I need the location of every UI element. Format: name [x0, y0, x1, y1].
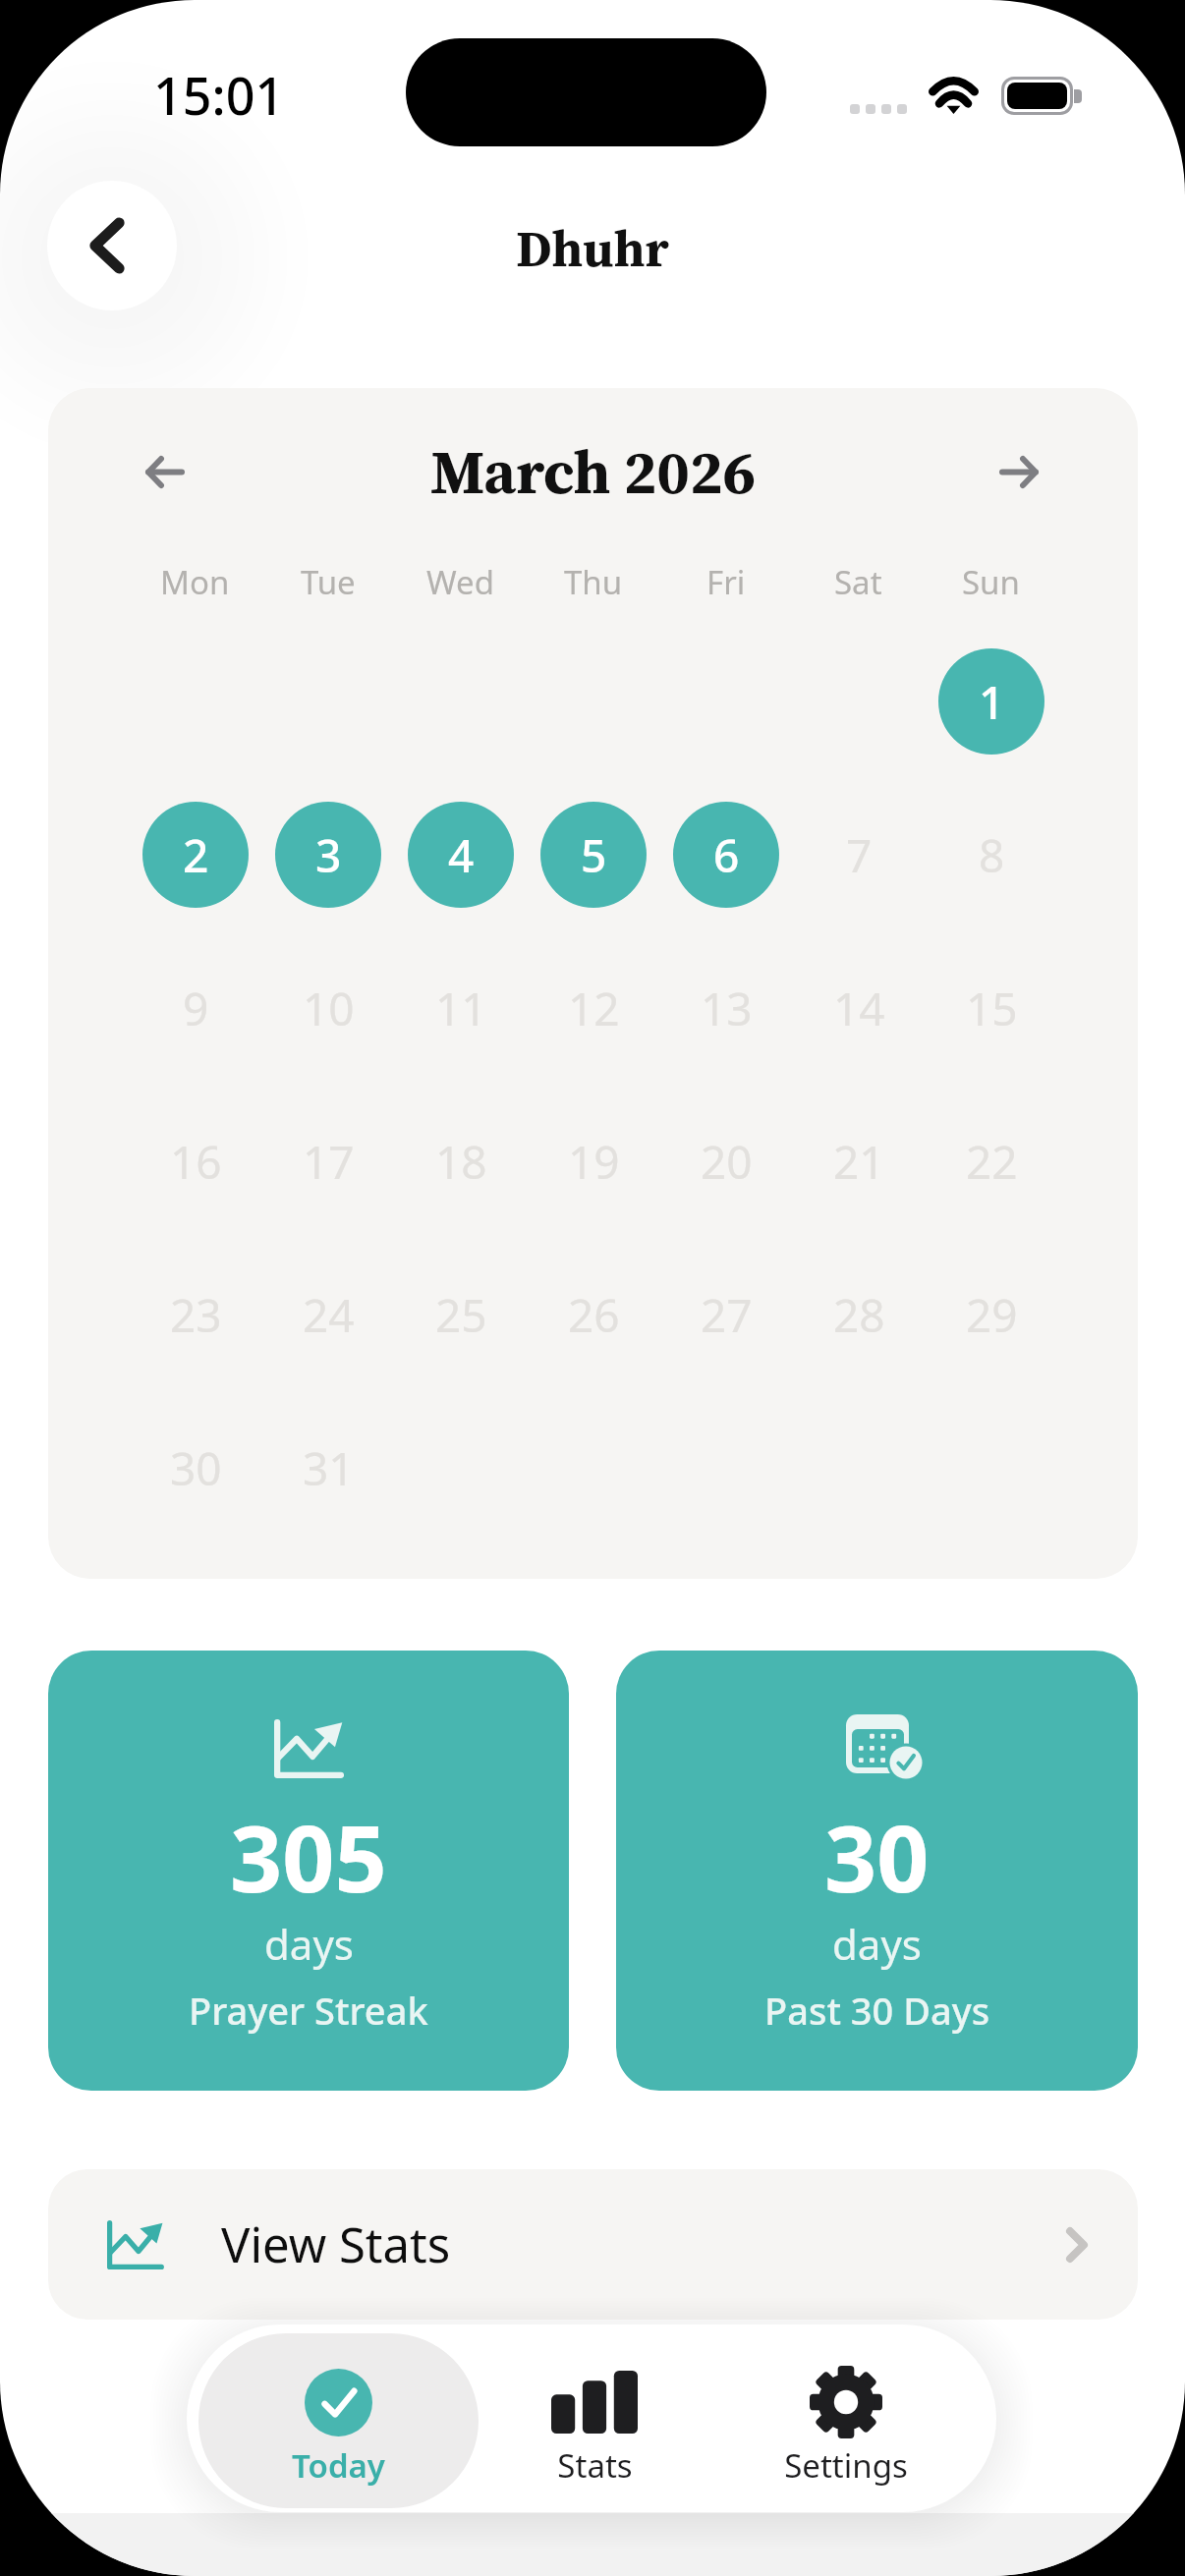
staticText: Thu — [564, 560, 623, 604]
button[interactable]: 15 — [938, 955, 1044, 1061]
staticText: 24 — [303, 1284, 355, 1346]
staticText: 29 — [966, 1284, 1018, 1346]
button[interactable]: 13 — [673, 955, 779, 1061]
button[interactable]: 5 — [540, 802, 647, 908]
button[interactable]: 1 — [938, 648, 1044, 755]
staticText: March 2026 — [430, 430, 757, 514]
staticText: 8 — [979, 824, 1005, 886]
button[interactable]: 9 — [142, 955, 249, 1061]
button[interactable]: 8 — [938, 802, 1044, 908]
button[interactable]: 19 — [540, 1108, 647, 1214]
button[interactable]: 14 — [806, 955, 912, 1061]
staticText: 9 — [183, 978, 209, 1039]
staticText: Today — [292, 2443, 385, 2488]
staticText: Prayer Streak — [189, 1985, 428, 2036]
button[interactable]: 10 — [275, 955, 381, 1061]
staticText: 21 — [833, 1131, 885, 1193]
button[interactable]: 18 — [408, 1108, 514, 1214]
button[interactable]: 6 — [673, 802, 779, 908]
button[interactable]: 30 — [142, 1415, 249, 1521]
button[interactable]: Back — [47, 181, 177, 310]
button[interactable]: 24 — [275, 1261, 381, 1368]
staticText: 11 — [435, 978, 487, 1039]
button[interactable]: 26 — [540, 1261, 647, 1368]
staticText: Dhuhr — [516, 213, 669, 283]
staticText: 31 — [303, 1437, 355, 1499]
staticText: 3 — [315, 824, 342, 886]
staticText: 30 — [824, 1795, 930, 1920]
button[interactable]: Settings — [705, 2333, 986, 2508]
button[interactable]: 23 — [142, 1261, 249, 1368]
button[interactable]: 305 — [48, 1651, 569, 2091]
staticText: 10 — [303, 978, 355, 1039]
staticText: Sat — [834, 560, 882, 604]
staticText: days — [264, 1916, 354, 1972]
staticText: 1 — [979, 671, 1005, 733]
staticText: 12 — [568, 978, 620, 1039]
button[interactable]: 25 — [408, 1261, 514, 1368]
button[interactable]: Stats — [454, 2333, 734, 2508]
staticText: 305 — [230, 1795, 387, 1920]
button[interactable]: Today — [198, 2333, 479, 2508]
staticText: View Stats — [221, 2212, 451, 2277]
staticText: Settings — [784, 2443, 908, 2488]
staticText: 17 — [303, 1131, 355, 1193]
staticText: 25 — [435, 1284, 487, 1346]
button[interactable]: 16 — [142, 1108, 249, 1214]
staticText: 13 — [701, 978, 753, 1039]
staticText: 7 — [846, 824, 873, 886]
staticText: Past 30 Days — [764, 1985, 990, 2036]
staticText: Mon — [160, 560, 230, 604]
staticText: 30 — [170, 1437, 222, 1499]
staticText: 19 — [568, 1131, 620, 1193]
staticText: 18 — [435, 1131, 487, 1193]
staticText: Fri — [706, 560, 746, 604]
button[interactable]: 31 — [275, 1415, 381, 1521]
staticText: Sun — [962, 560, 1020, 604]
staticText: 26 — [568, 1284, 620, 1346]
button[interactable]: View Stats — [48, 2169, 1138, 2320]
button[interactable]: 12 — [540, 955, 647, 1061]
staticText: 16 — [170, 1131, 222, 1193]
staticText: 15:01 — [153, 60, 285, 130]
staticText: 6 — [713, 824, 740, 886]
button[interactable]: 30 — [616, 1651, 1138, 2091]
button[interactable]: 21 — [806, 1108, 912, 1214]
button[interactable]: Next month — [953, 406, 1085, 537]
staticText: Stats — [557, 2443, 633, 2488]
button[interactable]: 11 — [408, 955, 514, 1061]
button[interactable]: 29 — [938, 1261, 1044, 1368]
staticText: 28 — [833, 1284, 885, 1346]
staticText: 14 — [833, 978, 885, 1039]
staticText: 22 — [966, 1131, 1018, 1193]
staticText: 27 — [701, 1284, 753, 1346]
button[interactable]: Previous month — [99, 406, 231, 537]
staticText: 4 — [448, 824, 475, 886]
staticText: 5 — [581, 824, 607, 886]
button[interactable]: 3 — [275, 802, 381, 908]
staticText: 23 — [170, 1284, 222, 1346]
staticText: 15 — [966, 978, 1018, 1039]
button[interactable]: 2 — [142, 802, 249, 908]
button[interactable]: 27 — [673, 1261, 779, 1368]
staticText: Wed — [426, 560, 494, 604]
staticText: 20 — [701, 1131, 753, 1193]
button[interactable]: 22 — [938, 1108, 1044, 1214]
staticText: days — [832, 1916, 922, 1972]
button[interactable]: 28 — [806, 1261, 912, 1368]
staticText: 2 — [183, 824, 209, 886]
button[interactable]: 20 — [673, 1108, 779, 1214]
staticText: Tue — [301, 560, 356, 604]
button[interactable]: 4 — [408, 802, 514, 908]
button[interactable]: 17 — [275, 1108, 381, 1214]
